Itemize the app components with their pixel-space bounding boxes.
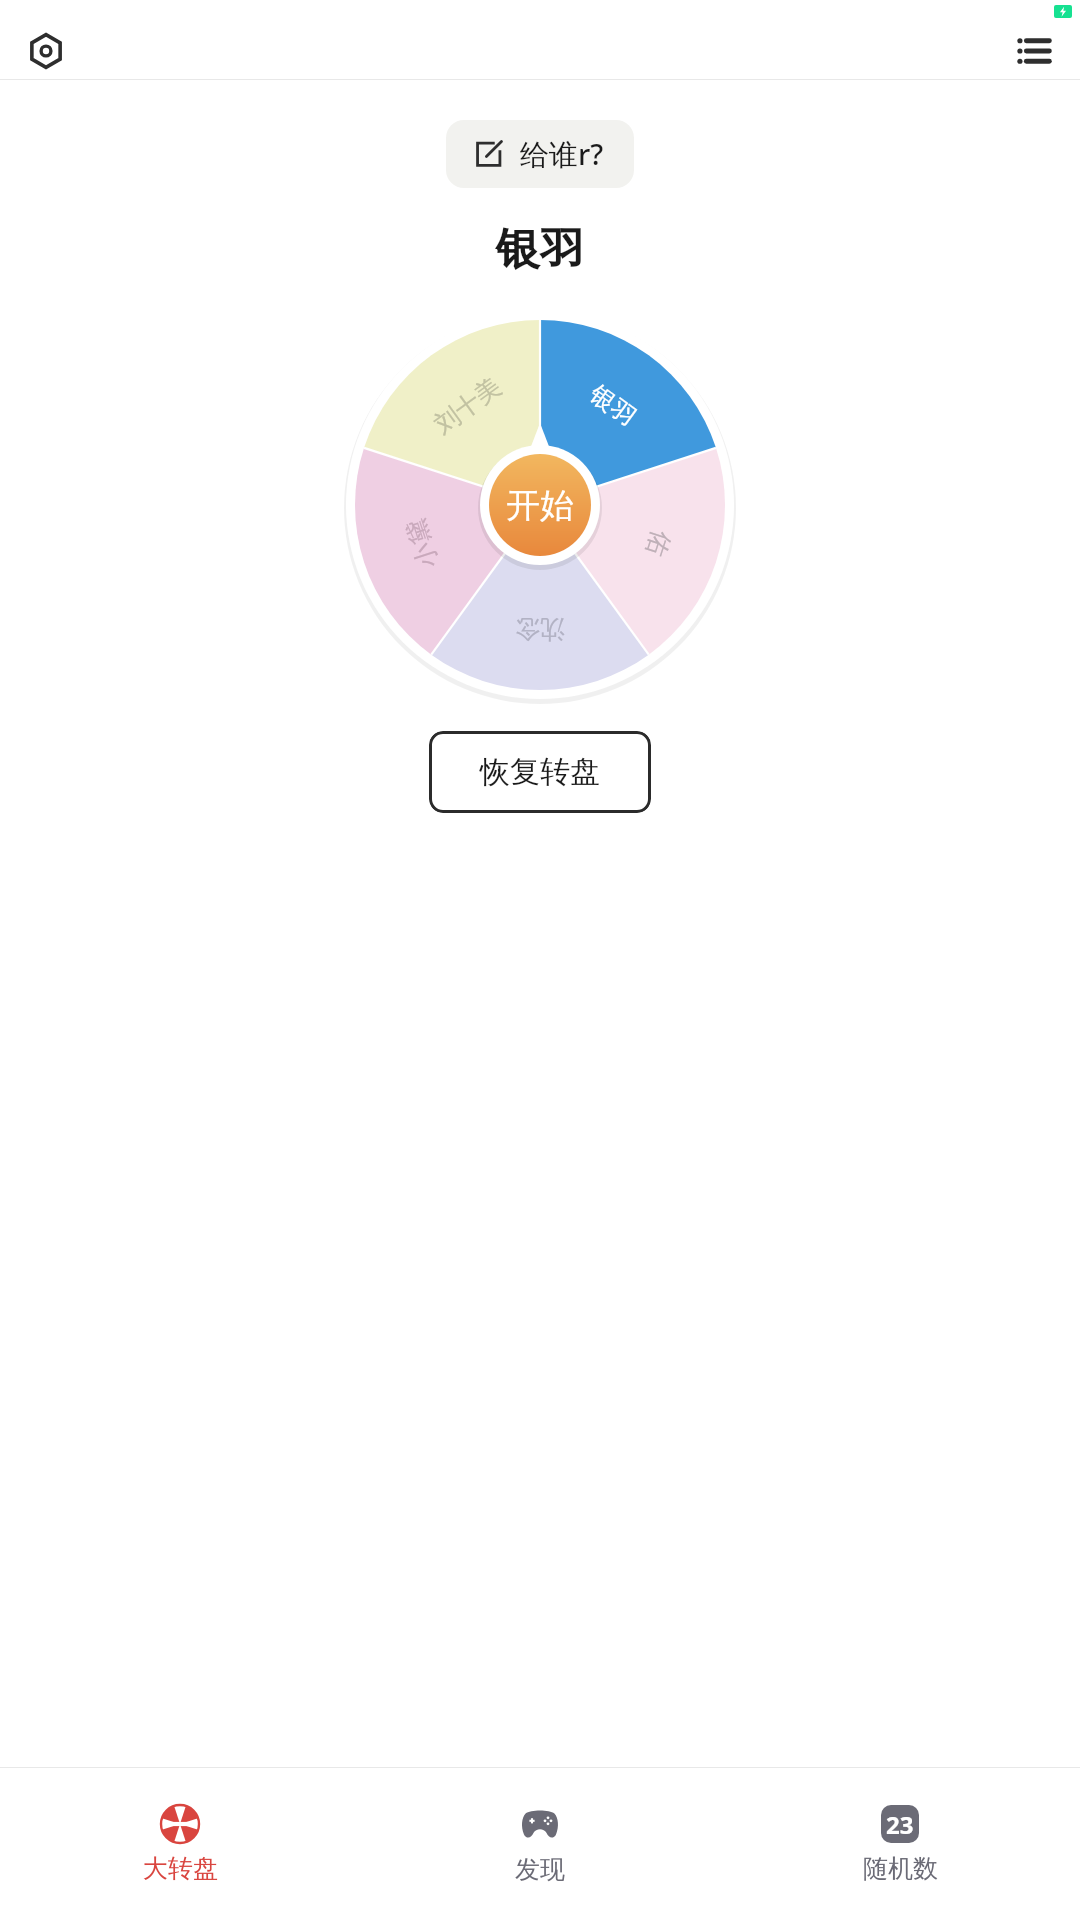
staticText: 银羽 (0, 222, 1080, 277)
staticText: 发现 (515, 1854, 565, 1885)
button[interactable]: 给谁r? (446, 120, 634, 188)
staticText: 小黛 (399, 515, 444, 572)
staticText: 银羽 (584, 378, 642, 433)
button[interactable]: 23 (720, 1768, 1080, 1920)
staticText: 刘十美 (428, 371, 507, 440)
button[interactable]: 开始 (489, 454, 591, 556)
staticText: 恢复转盘 (480, 753, 600, 791)
button[interactable]: Settings (22, 27, 70, 75)
button[interactable]: 恢复转盘 (429, 731, 651, 813)
staticText: 沈念 (515, 614, 565, 645)
staticText: 给谁r? (520, 134, 604, 174)
staticText: 佑 (640, 527, 677, 560)
staticText: 开始 (506, 484, 574, 527)
staticText: 23 (886, 1808, 914, 1841)
staticText: 随机数 (863, 1853, 938, 1884)
staticText: 大转盘 (143, 1853, 218, 1884)
button[interactable]: List (1010, 27, 1058, 75)
button[interactable]: 发现 (360, 1768, 720, 1920)
button[interactable]: 大转盘 (0, 1768, 360, 1920)
